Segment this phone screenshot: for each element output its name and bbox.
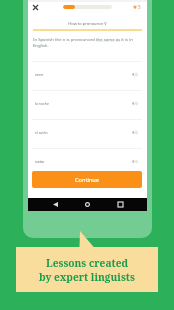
button[interactable]: Back [50,199,61,210]
button[interactable]: Recents [115,199,126,210]
staticText: Continue [75,176,99,184]
staticText: el avión [35,130,48,135]
staticText: Lessons created [46,256,129,270]
staticText: 5 [138,4,141,10]
staticText: by expert linguists [39,270,135,284]
staticText: nadar [35,159,45,164]
button[interactable]: Play audio [130,128,139,137]
button[interactable]: 5 [132,1,142,12]
button[interactable]: Play audio [130,70,139,79]
staticText: la noche [35,101,49,106]
button[interactable]: Play audio [130,157,139,166]
button[interactable]: Continue [32,171,142,188]
staticText: How to pronounce V [28,21,147,26]
button[interactable]: Play audio [130,99,139,108]
staticText: venir [35,72,44,77]
button[interactable]: venir [32,60,142,88]
button[interactable]: Home [82,199,93,210]
button[interactable]: el avión [32,118,142,146]
button[interactable]: la noche [32,89,142,117]
button[interactable]: Close [30,2,41,13]
button[interactable]: nadar [32,147,142,175]
staticText: In Spanish the n is pronounced the same … [33,36,135,48]
